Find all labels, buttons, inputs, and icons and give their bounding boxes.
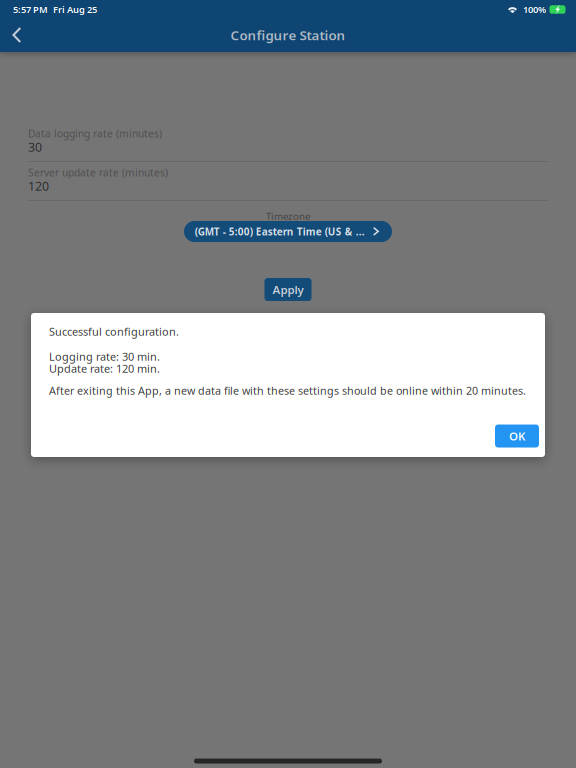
staticText: 120: [28, 178, 49, 194]
staticText: Server update rate (minutes): [28, 166, 168, 179]
staticText: Apply: [272, 282, 303, 297]
staticText: Update rate: 120 min.: [49, 361, 160, 376]
button[interactable]: (GMT - 5:00) Eastern Time (US & ...: [184, 221, 392, 242]
staticText: (GMT - 5:00) Eastern Time (US & ...: [195, 225, 365, 238]
staticText: After exiting this App, a new data file …: [49, 383, 526, 398]
staticText: Timezone: [266, 209, 310, 223]
staticText: Configure Station: [230, 26, 345, 44]
button[interactable]: Apply: [264, 278, 311, 301]
button[interactable]: Back: [0, 18, 34, 51]
staticText: 30: [28, 139, 42, 155]
staticText: Data logging rate (minutes): [28, 127, 162, 140]
staticText: 100%: [523, 3, 546, 16]
button[interactable]: OK: [495, 424, 539, 447]
staticText: Successful configuration.: [49, 324, 179, 339]
staticText: Logging rate: 30 min.: [49, 349, 160, 364]
staticText: OK: [509, 428, 525, 444]
staticText: 5:57 PM: [13, 3, 48, 16]
staticText: Fri Aug 25: [53, 3, 97, 16]
